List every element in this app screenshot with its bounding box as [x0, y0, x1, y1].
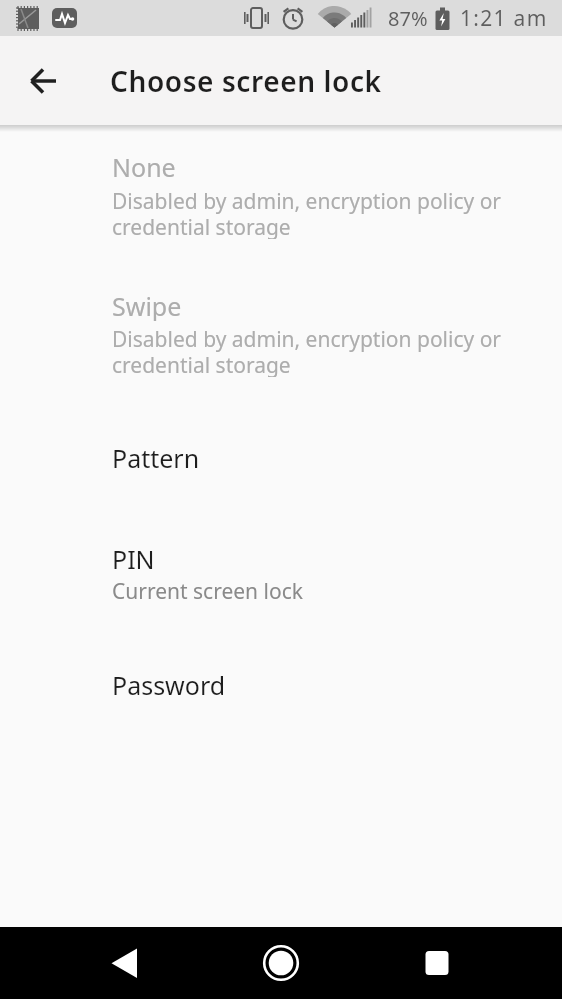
button[interactable]: Pattern: [0, 441, 562, 473]
button[interactable]: [257, 939, 305, 987]
button[interactable]: Password: [0, 668, 562, 700]
staticText: Choose screen lock: [110, 62, 382, 100]
staticText: None: [112, 150, 176, 182]
staticText: Disabled by admin, encryption policy or …: [112, 187, 502, 239]
button[interactable]: PIN: [0, 542, 562, 603]
staticText: Pattern: [112, 441, 200, 473]
staticText: 1:21 am: [460, 4, 548, 33]
button[interactable]: [413, 939, 461, 987]
button[interactable]: None: [0, 150, 562, 239]
staticText: Password: [112, 668, 226, 700]
button[interactable]: Swipe: [0, 289, 562, 377]
button[interactable]: [101, 939, 149, 987]
staticText: Current screen lock: [112, 577, 303, 603]
staticText: 87%: [388, 5, 428, 32]
staticText: PIN: [112, 542, 155, 574]
button[interactable]: [20, 57, 68, 105]
staticText: Disabled by admin, encryption policy or …: [112, 325, 502, 377]
staticText: Swipe: [112, 289, 182, 321]
